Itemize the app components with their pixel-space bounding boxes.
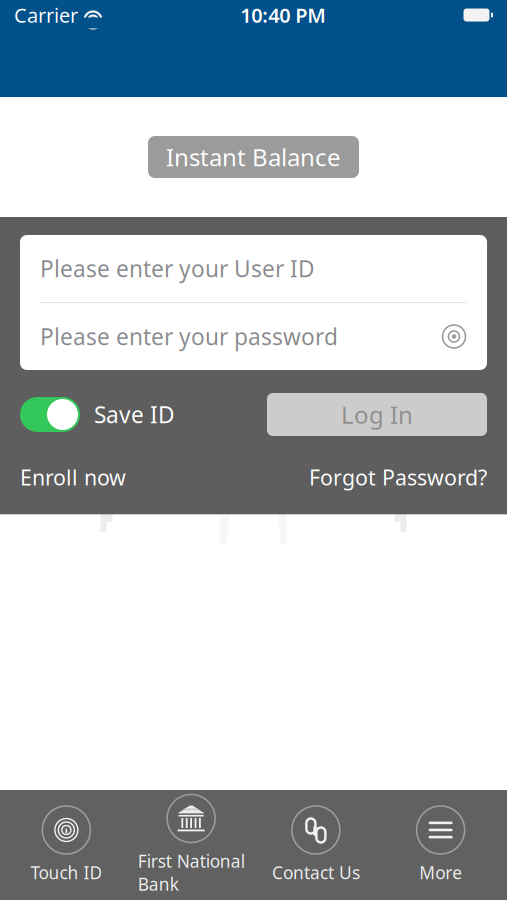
staticText: Forgot Password? [309,463,487,491]
button[interactable]: Please enter your User ID [20,235,487,302]
button[interactable]: Please enter your password [20,303,487,370]
staticText: Carrier [14,2,78,28]
staticText: First National Bank [138,849,245,895]
staticText: Contact Us [272,861,360,884]
staticText: 10:40 PM [240,2,326,28]
button[interactable]: Instant Balance [148,136,359,178]
button[interactable]: Forgot Password? [309,463,487,491]
staticText: Log In [341,399,413,430]
button[interactable]: Contact Us [253,800,378,890]
button[interactable]: Save ID [20,397,175,432]
button[interactable]: First National Bank [129,788,254,900]
staticText: Enroll now [20,463,126,491]
staticText: Please enter your User ID [40,253,315,283]
staticText: Touch ID [30,861,102,884]
staticText: Save ID [94,399,175,429]
button[interactable]: More [378,800,503,890]
button[interactable]: Log In [267,393,487,436]
button[interactable]: Enroll now [20,463,126,491]
button[interactable]: Touch ID [4,800,129,890]
staticText: More [419,861,462,884]
staticText: Instant Balance [166,141,341,173]
staticText: Please enter your password [40,321,338,351]
